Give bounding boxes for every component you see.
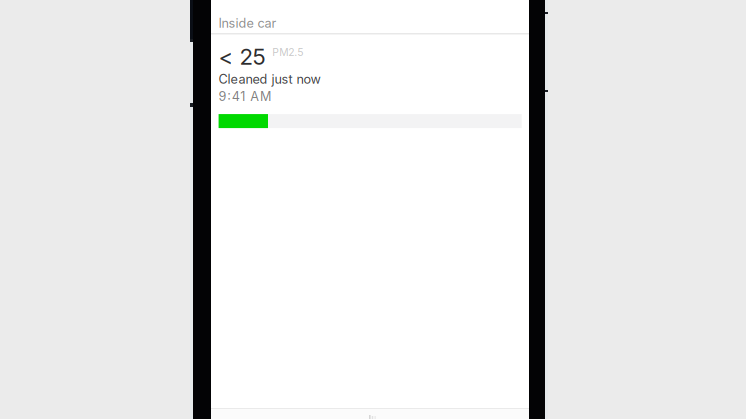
staticText: < 25 bbox=[219, 43, 266, 70]
staticText: Cleaned just now bbox=[219, 71, 321, 87]
staticText: PM2.5 bbox=[272, 46, 303, 58]
staticText: 9:41 AM bbox=[219, 89, 271, 104]
button[interactable]: Air quality bbox=[317, 409, 423, 419]
button[interactable]: < 25 bbox=[211, 34, 529, 128]
staticText: Inside car bbox=[219, 15, 277, 31]
